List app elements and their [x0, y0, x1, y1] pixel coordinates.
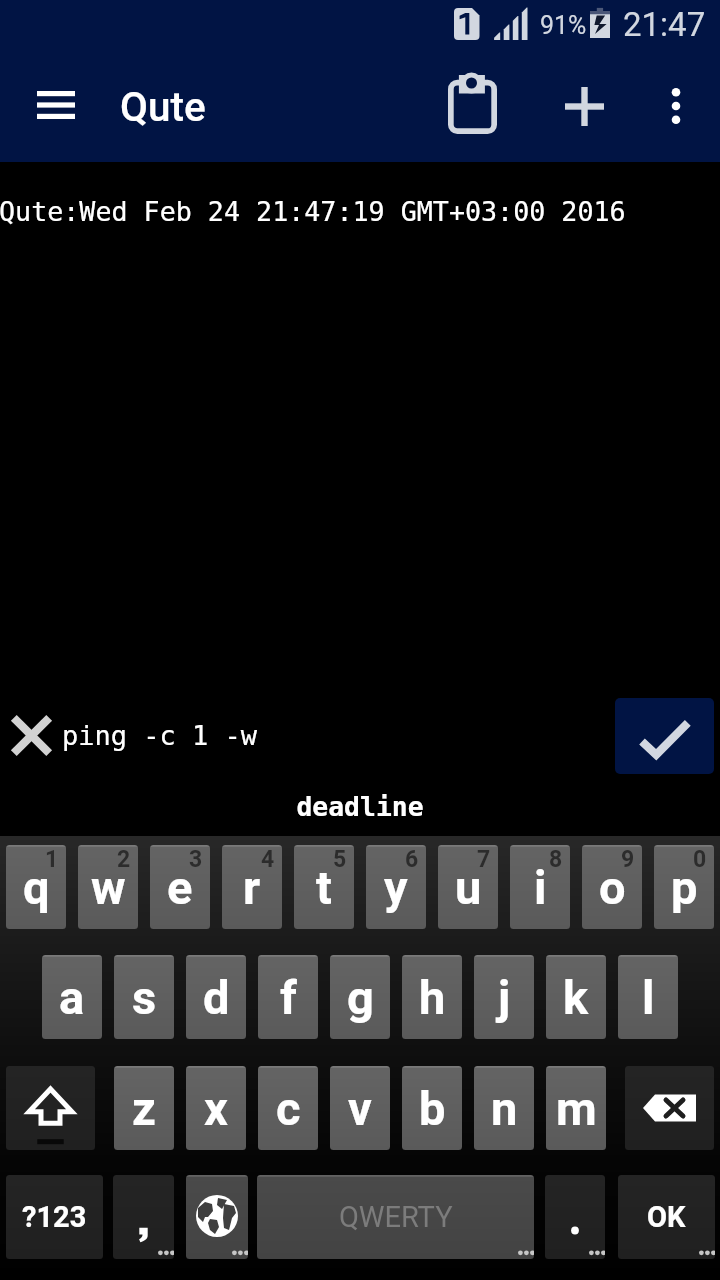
button[interactable]: Paste from clipboard [436, 68, 508, 140]
staticText: OK [647, 1200, 686, 1234]
button[interactable]: Navigation menu [16, 69, 96, 141]
staticText: i [534, 860, 547, 915]
button[interactable]: u [438, 845, 498, 929]
staticText: q [23, 860, 50, 915]
staticText: a [59, 970, 85, 1025]
button[interactable]: Clear command [7, 711, 56, 760]
button[interactable]: Shift [6, 1066, 95, 1150]
staticText: 5 [333, 846, 347, 873]
staticText: 6 [405, 846, 419, 873]
button[interactable]: c [258, 1066, 318, 1150]
staticText: ping -c 1 -w [62, 720, 258, 751]
button[interactable]: e [150, 845, 210, 929]
button[interactable]: y [366, 845, 426, 929]
button[interactable]: a [42, 955, 102, 1039]
staticText: f [280, 970, 297, 1025]
button[interactable]: p [654, 845, 714, 929]
staticText: 21:47 [623, 5, 706, 44]
staticText: 4 [261, 846, 275, 873]
staticText: p [671, 860, 698, 915]
button[interactable]: Run command [615, 698, 714, 774]
staticText: v [348, 1081, 372, 1136]
button[interactable]: OK [618, 1175, 715, 1259]
staticText: n [491, 1081, 518, 1136]
button[interactable]: x [186, 1066, 246, 1150]
staticText: y [384, 860, 408, 915]
button[interactable]: ?123 [6, 1175, 103, 1259]
staticText: x [204, 1081, 228, 1136]
button[interactable]: Change keyboard [186, 1175, 248, 1259]
button[interactable]: v [330, 1066, 390, 1150]
button[interactable]: More options [644, 70, 708, 142]
staticText: Qute [120, 83, 206, 130]
staticText: 3 [189, 846, 203, 873]
staticText: g [347, 970, 374, 1025]
staticText: e [167, 860, 193, 915]
button[interactable]: m [546, 1066, 606, 1150]
staticText: u [455, 860, 482, 915]
staticText: Qute:Wed Feb 24 21:47:19 GMT+03:00 2016 [0, 196, 626, 227]
staticText: k [563, 970, 589, 1025]
button[interactable]: Backspace [625, 1066, 714, 1150]
button[interactable]: z [114, 1066, 174, 1150]
button[interactable]: r [222, 845, 282, 929]
staticText: m [556, 1081, 597, 1136]
staticText: 91% [540, 11, 587, 40]
staticText: ?123 [22, 1200, 87, 1234]
button[interactable]: h [402, 955, 462, 1039]
staticText: t [316, 860, 332, 915]
button[interactable]: Add [548, 70, 620, 142]
staticText: d [203, 970, 230, 1025]
staticText: 9 [621, 846, 635, 873]
staticText: l [642, 970, 655, 1025]
staticText: j [498, 970, 511, 1025]
button[interactable]: w [78, 845, 138, 929]
staticText: r [243, 860, 261, 915]
staticText: QWERTY [339, 1200, 453, 1234]
button[interactable]: s [114, 955, 174, 1039]
button[interactable]: k [546, 955, 606, 1039]
button[interactable]: Comma [113, 1175, 174, 1259]
button[interactable]: b [402, 1066, 462, 1150]
button[interactable]: o [582, 845, 642, 929]
button[interactable]: f [258, 955, 318, 1039]
button[interactable]: q [6, 845, 66, 929]
button[interactable]: l [618, 955, 678, 1039]
staticText: o [599, 860, 626, 915]
staticText: 2 [117, 846, 131, 873]
staticText: c [276, 1081, 301, 1136]
button[interactable]: Space [257, 1175, 534, 1259]
staticText: z [132, 1081, 156, 1136]
staticText: w [91, 860, 126, 915]
button[interactable]: Period [545, 1175, 605, 1259]
staticText: 0 [693, 846, 707, 873]
staticText: s [132, 970, 157, 1025]
staticText: h [419, 970, 446, 1025]
button[interactable]: d [186, 955, 246, 1039]
staticText: 1 [45, 846, 59, 873]
button[interactable]: g [330, 955, 390, 1039]
button[interactable]: t [294, 845, 354, 929]
button[interactable]: n [474, 1066, 534, 1150]
button[interactable]: i [510, 845, 570, 929]
staticText: b [419, 1081, 446, 1136]
staticText: 7 [477, 846, 491, 873]
button[interactable]: j [474, 955, 534, 1039]
staticText: deadline [0, 791, 720, 822]
staticText: 8 [549, 846, 563, 873]
